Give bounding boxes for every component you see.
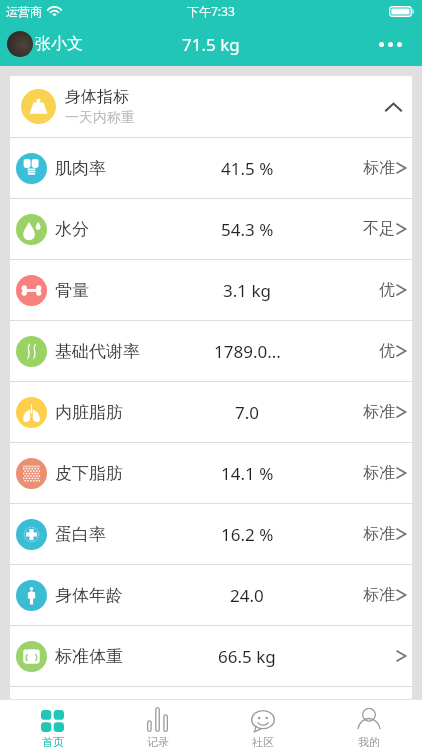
staticText: 身体年龄 — [55, 585, 123, 606]
staticText: 14.1 % — [221, 462, 274, 485]
button[interactable]: 水分 — [10, 199, 412, 259]
staticText: 71.5 kg — [182, 33, 240, 56]
button[interactable]: 首页 — [0, 700, 105, 750]
button[interactable]: 骨量 — [10, 260, 412, 320]
staticText: 标准 — [363, 158, 395, 178]
staticText: 基础代谢率 — [55, 341, 140, 362]
button[interactable]: 身体指标 — [10, 76, 412, 137]
staticText: 首页 — [42, 735, 64, 749]
staticText: 记录 — [147, 735, 169, 749]
staticText: 内脏脂肪 — [55, 402, 123, 423]
button[interactable]: 记录 — [105, 700, 210, 750]
staticText: 标准 — [363, 463, 395, 483]
staticText: 皮下脂肪 — [55, 463, 123, 484]
staticText: 身体指标 — [65, 87, 129, 107]
staticText: 肌肉率 — [55, 158, 106, 179]
staticText: 下午7:33 — [187, 3, 235, 19]
staticText: 我的 — [358, 735, 380, 749]
staticText: 标准体重 — [55, 646, 123, 667]
button[interactable]: 基础代谢率 — [10, 321, 412, 381]
staticText: 7.0 — [235, 401, 260, 424]
button[interactable]: 我的 — [316, 700, 422, 750]
staticText: 水分 — [55, 219, 89, 240]
button[interactable]: 蛋白率 — [10, 504, 412, 564]
staticText: 标准 — [363, 585, 395, 605]
staticText: 54.3 % — [221, 218, 274, 241]
staticText: 社区 — [252, 735, 274, 749]
staticText: 运营商 — [6, 4, 42, 19]
staticText: 1789.0... — [214, 340, 281, 363]
button[interactable]: 皮下脂肪 — [10, 443, 412, 503]
staticText: 蛋白率 — [55, 524, 106, 545]
staticText: 一天内称重 — [65, 109, 135, 127]
staticText: 标准 — [363, 524, 395, 544]
button[interactable]: 身体年龄 — [10, 565, 412, 625]
staticText: 66.5 kg — [218, 645, 276, 668]
button[interactable]: User avatar — [7, 31, 33, 57]
staticText: 3.1 kg — [223, 279, 271, 302]
staticText: 优 — [379, 341, 395, 361]
staticText: 16.2 % — [221, 523, 274, 546]
button[interactable]: 标准体重 — [10, 626, 412, 686]
staticText: 优 — [379, 280, 395, 300]
button[interactable]: 内脏脂肪 — [10, 382, 412, 442]
staticText: 41.5 % — [221, 157, 274, 180]
button[interactable]: 肌肉率 — [10, 138, 412, 198]
button[interactable]: More options — [375, 38, 406, 51]
button[interactable]: 社区 — [210, 700, 316, 750]
staticText: 标准 — [363, 402, 395, 422]
staticText: 张小文 — [35, 34, 83, 54]
staticText: 24.0 — [230, 584, 264, 607]
staticText: 骨量 — [55, 280, 89, 301]
staticText: 不足 — [363, 219, 395, 239]
